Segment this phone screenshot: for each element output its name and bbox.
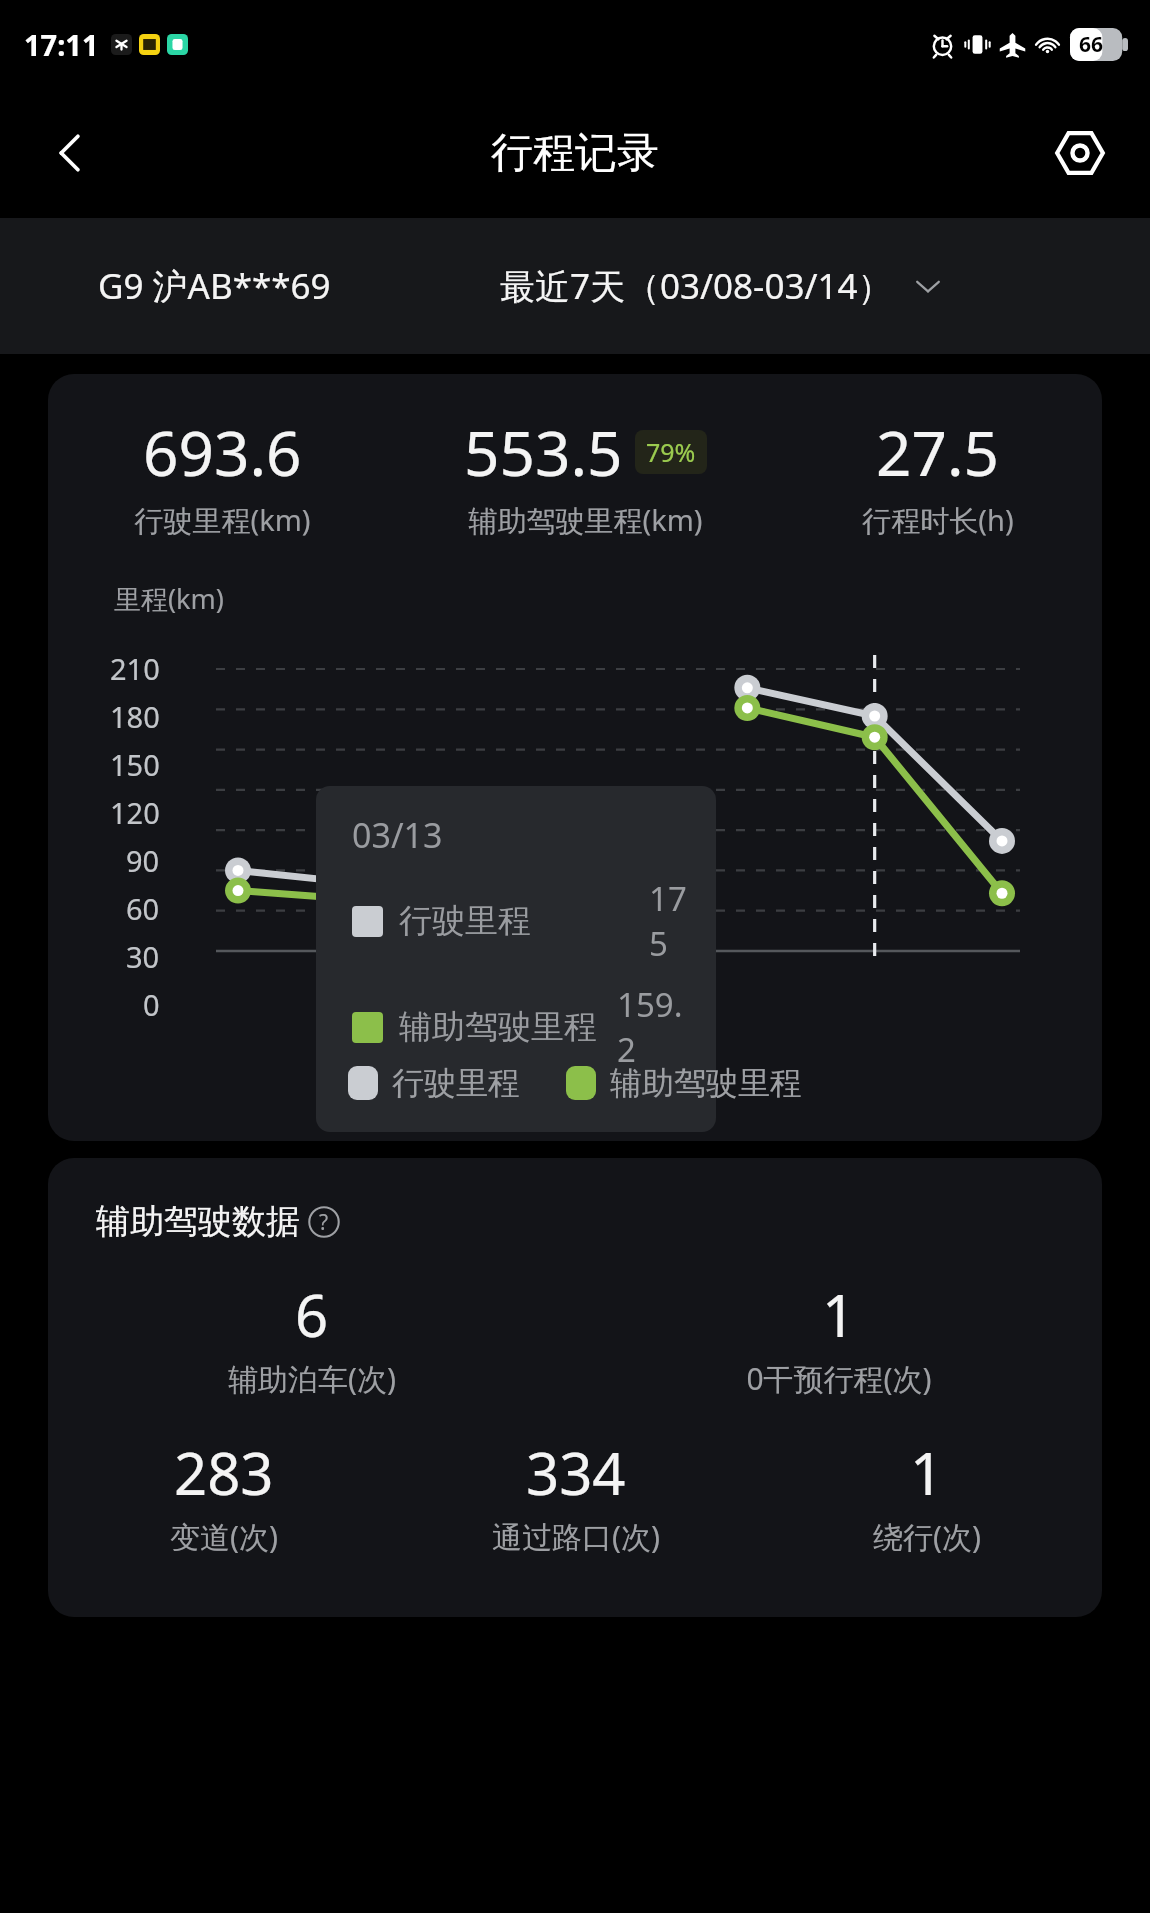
staticText: 17:11: [24, 25, 99, 64]
staticText: 1: [910, 1433, 944, 1512]
staticText: 行驶里程: [399, 900, 531, 942]
staticText: 159.2: [617, 982, 698, 1072]
button[interactable]: G9 沪AB***69: [0, 218, 1150, 354]
button[interactable]: 辅助驾驶数据: [48, 1158, 1102, 1617]
button[interactable]: 1: [751, 1433, 1102, 1557]
staticText: 283: [174, 1433, 274, 1512]
staticText: 150: [110, 745, 160, 784]
staticText: 03/13: [352, 812, 443, 858]
button[interactable]: Back: [30, 113, 110, 193]
staticText: 辅助驾驶里程: [610, 1063, 802, 1103]
button[interactable]: 03/13: [316, 786, 716, 1132]
staticText: 辅助驾驶里程(km): [468, 500, 703, 540]
staticText: 175: [649, 876, 698, 966]
staticText: 210: [110, 649, 160, 688]
button[interactable]: 1: [575, 1275, 1102, 1399]
staticText: 60: [126, 889, 160, 928]
staticText: 1: [822, 1275, 856, 1354]
staticText: 334: [526, 1433, 626, 1512]
staticText: 30: [126, 937, 160, 976]
button[interactable]: Settings: [1040, 113, 1120, 193]
staticText: 行驶里程: [392, 1063, 520, 1103]
staticText: 693.6: [143, 410, 302, 494]
staticText: 90: [126, 841, 160, 880]
button[interactable]: 334: [400, 1433, 751, 1557]
staticText: 79%: [646, 435, 696, 469]
staticText: 行驶里程(km): [134, 500, 311, 540]
staticText: 行程时长(h): [862, 500, 1014, 540]
staticText: 6: [295, 1275, 329, 1354]
staticText: G9 沪AB***69: [98, 262, 331, 310]
staticText: 120: [110, 793, 160, 832]
button[interactable]: 行驶里程: [348, 1063, 520, 1103]
staticText: 里程(km): [114, 580, 224, 617]
button[interactable]: Help: [308, 1206, 340, 1238]
staticText: 27.5: [876, 410, 1000, 494]
button[interactable]: 辅助驾驶里程: [566, 1063, 802, 1103]
staticText: 行程记录: [491, 127, 659, 180]
button[interactable]: 6: [48, 1275, 575, 1399]
staticText: 通过路口(次): [492, 1516, 660, 1557]
staticText: 180: [110, 697, 160, 736]
staticText: 辅助驾驶里程: [399, 1006, 597, 1048]
staticText: 66: [1079, 30, 1104, 59]
staticText: 辅助泊车(次): [228, 1358, 396, 1399]
staticText: 553.5: [464, 410, 623, 494]
staticText: 最近7天（03/08-03/14）: [500, 262, 893, 310]
staticText: 辅助驾驶数据: [96, 1200, 300, 1243]
staticText: 变道(次): [170, 1516, 278, 1557]
button[interactable]: 693.6: [48, 374, 1102, 1141]
staticText: ?: [319, 1208, 329, 1237]
staticText: 0干预行程(次): [746, 1358, 932, 1399]
staticText: 绕行(次): [873, 1516, 981, 1557]
button[interactable]: 283: [48, 1433, 400, 1557]
staticText: 0: [143, 985, 160, 1024]
